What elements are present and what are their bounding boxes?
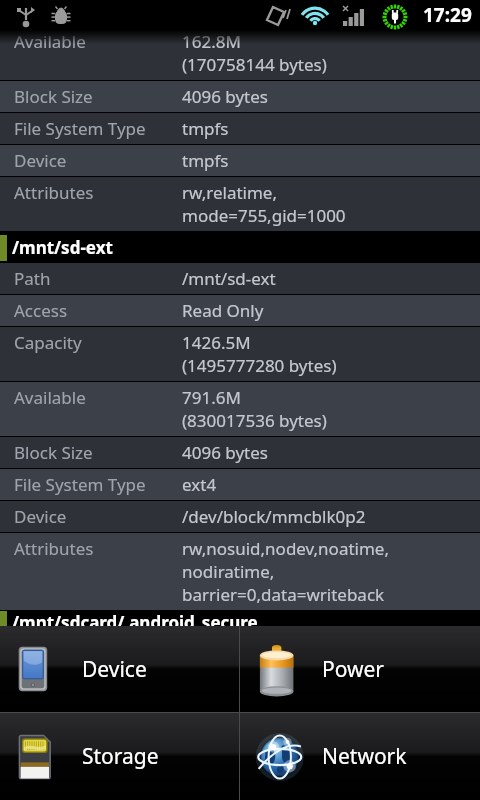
staticText: 4096 bytes — [182, 85, 268, 108]
button[interactable]: Device — [0, 501, 480, 533]
staticText: Read Only — [182, 299, 264, 322]
button[interactable]: Attributes — [0, 533, 480, 611]
button[interactable]: Power — [240, 626, 480, 712]
staticText: Available — [14, 30, 86, 53]
button[interactable]: Attributes — [0, 177, 480, 232]
staticText: /dev/block/mmcblk0p2 — [182, 505, 366, 528]
staticText: (170758144 bytes) — [182, 53, 327, 76]
button[interactable]: Available — [0, 30, 480, 81]
staticText: Capacity — [14, 331, 82, 354]
staticText: Block Size — [14, 441, 93, 464]
staticText: Attributes — [14, 537, 94, 560]
staticText: barrier=0,data=writeback — [182, 583, 385, 606]
button[interactable]: Network — [240, 713, 480, 800]
staticText: (1495777280 bytes) — [182, 354, 337, 377]
staticText: /mnt/sd-ext — [12, 236, 113, 259]
staticText: nodiratime, — [182, 560, 275, 583]
staticText: File System Type — [14, 473, 146, 496]
staticText: Path — [14, 267, 51, 290]
button[interactable]: Capacity — [0, 327, 480, 382]
staticText: tmpfs — [182, 117, 229, 140]
button[interactable]: Access — [0, 295, 480, 327]
staticText: Device — [82, 655, 147, 684]
staticText: Available — [14, 386, 86, 409]
staticText: ext4 — [182, 473, 217, 496]
staticText: (830017536 bytes) — [182, 409, 327, 432]
button[interactable]: Device — [0, 145, 480, 177]
staticText: /mnt/sdcard/.android_secure — [12, 611, 258, 626]
staticText: Power — [322, 655, 385, 684]
staticText: 162.8M — [182, 30, 241, 53]
staticText: tmpfs — [182, 149, 229, 172]
staticText: Device — [14, 505, 67, 528]
staticText: Storage — [82, 742, 159, 771]
button[interactable]: /mnt/sdcard/.android_secure — [0, 611, 480, 626]
button[interactable]: File System Type — [0, 469, 480, 501]
staticText: rw,nosuid,nodev,noatime, — [182, 537, 389, 560]
button[interactable]: /mnt/sd-ext — [0, 232, 480, 263]
staticText: mode=755,gid=1000 — [182, 204, 346, 227]
button[interactable]: Device — [0, 626, 239, 712]
staticText: Block Size — [14, 85, 93, 108]
staticText: Access — [14, 299, 68, 322]
button[interactable]: Block Size — [0, 81, 480, 113]
staticText: Attributes — [14, 181, 94, 204]
staticText: 1426.5M — [182, 331, 251, 354]
button[interactable]: Path — [0, 263, 480, 295]
staticText: File System Type — [14, 117, 146, 140]
button[interactable]: Storage — [0, 713, 239, 800]
staticText: 17:29 — [423, 2, 472, 28]
button[interactable]: Block Size — [0, 437, 480, 469]
staticText: /mnt/sd-ext — [182, 267, 276, 290]
staticText: rw,relatime, — [182, 181, 278, 204]
button[interactable]: Available — [0, 382, 480, 437]
button[interactable]: File System Type — [0, 113, 480, 145]
staticText: Network — [322, 742, 407, 771]
staticText: 4096 bytes — [182, 441, 268, 464]
staticText: Device — [14, 149, 67, 172]
staticText: 791.6M — [182, 386, 241, 409]
